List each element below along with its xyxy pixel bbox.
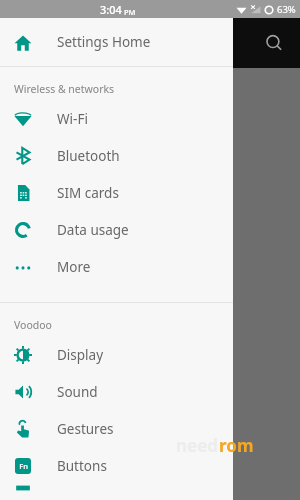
- staticText: Wi-Fi: [57, 110, 88, 128]
- button[interactable]: Data usage: [0, 211, 233, 248]
- button[interactable]: SIM cards: [0, 174, 233, 211]
- staticText: Fn: [19, 461, 28, 471]
- button[interactable]: Bluetooth: [0, 137, 233, 174]
- staticText: Data usage: [57, 221, 129, 239]
- staticText: Settings Home: [57, 33, 151, 51]
- staticText: Voodoo: [14, 318, 52, 332]
- staticText: SIM cards: [57, 184, 119, 202]
- button[interactable]: Display: [0, 336, 233, 373]
- button[interactable]: Search: [254, 23, 294, 63]
- staticText: need: [176, 434, 219, 457]
- staticText: PM: [124, 7, 136, 17]
- button[interactable]: Fn: [0, 447, 233, 484]
- staticText: Sound: [57, 383, 98, 401]
- button[interactable]: Settings Home: [0, 18, 233, 66]
- staticText: More: [57, 258, 91, 276]
- staticText: Bluetooth: [57, 147, 120, 165]
- staticText: rom: [219, 434, 254, 457]
- staticText: 63%: [277, 3, 296, 16]
- staticText: Buttons: [57, 457, 107, 475]
- button[interactable]: Gestures: [0, 410, 233, 447]
- button[interactable]: Sound: [0, 373, 233, 410]
- button[interactable]: [0, 484, 233, 500]
- button[interactable]: More: [0, 248, 233, 285]
- staticText: Display: [57, 346, 104, 364]
- button[interactable]: Wi-Fi: [0, 100, 233, 137]
- staticText: Gestures: [57, 420, 114, 438]
- staticText: Wireless & networks: [14, 82, 115, 96]
- staticText: 3:04: [100, 2, 122, 17]
